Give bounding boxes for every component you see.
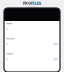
staticText: PROFILES [23,1,41,6]
